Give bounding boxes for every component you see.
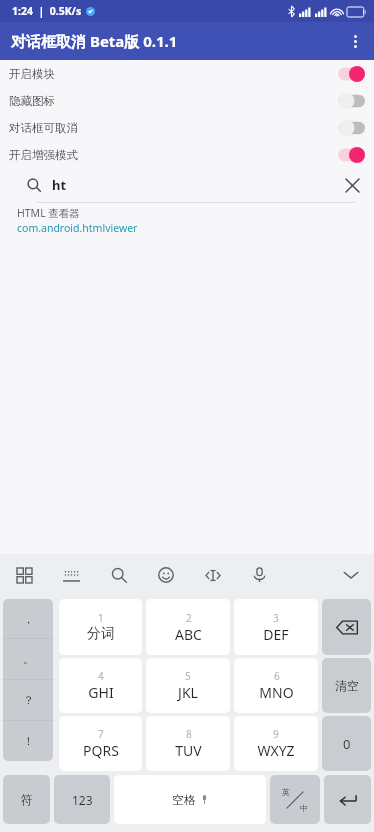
staticText: 0 xyxy=(343,735,351,753)
staticText: 符 xyxy=(21,792,33,807)
staticText: DEF xyxy=(263,625,289,644)
staticText: ht xyxy=(52,176,67,194)
button[interactable]: Hide keyboard xyxy=(328,554,374,596)
staticText: HTML 查看器 xyxy=(17,206,80,220)
button[interactable]: 清空 xyxy=(322,658,371,713)
staticText: ABC xyxy=(175,625,202,644)
button[interactable]: 7 xyxy=(59,716,142,771)
button[interactable]: Search xyxy=(95,554,142,596)
button[interactable]: 9 xyxy=(234,716,318,771)
button[interactable]: Keyboard xyxy=(48,554,95,596)
staticText: 对话框取消 Beta版 0.1.1 xyxy=(11,31,178,51)
button[interactable]: 4 xyxy=(59,658,142,713)
staticText: 4 xyxy=(98,669,104,683)
button[interactable]: 隐藏图标 xyxy=(0,87,374,114)
staticText: 对话框可取消 xyxy=(9,121,78,135)
staticText: 中 xyxy=(300,803,308,813)
button[interactable]: 开启模块 xyxy=(0,60,374,87)
button[interactable]: More options xyxy=(336,22,374,60)
staticText: ， xyxy=(23,612,34,626)
staticText: 开启模块 xyxy=(9,67,55,81)
staticText: ！ xyxy=(23,734,34,748)
button[interactable]: ， xyxy=(3,599,53,638)
staticText: 。 xyxy=(23,652,34,666)
button[interactable]: HTML 查看器 xyxy=(0,203,374,239)
button[interactable]: 2 xyxy=(146,599,230,655)
staticText: 3 xyxy=(273,611,279,625)
button[interactable]: 空格 xyxy=(114,775,266,824)
staticText: PQRS xyxy=(83,741,119,760)
button[interactable]: ？ xyxy=(3,680,53,720)
staticText: 英 xyxy=(282,787,290,797)
staticText: 7 xyxy=(98,727,104,741)
button[interactable]: 3 xyxy=(234,599,318,655)
staticText: 5 xyxy=(185,669,191,683)
staticText: ？ xyxy=(23,693,34,707)
button[interactable]: Enter xyxy=(324,775,371,824)
button[interactable]: Clear search xyxy=(335,168,369,202)
staticText: TUV xyxy=(175,741,202,760)
button[interactable]: 123 xyxy=(54,775,110,824)
button[interactable]: English Chinese toggle xyxy=(270,775,320,824)
button[interactable]: Backspace xyxy=(322,599,371,655)
staticText: 8 xyxy=(186,727,192,741)
button[interactable]: Keyboard layouts xyxy=(0,554,48,596)
button[interactable]: ！ xyxy=(3,721,53,761)
button[interactable]: 开启增强模式 xyxy=(0,141,374,168)
staticText: MNO xyxy=(259,683,294,702)
staticText: 分词 xyxy=(87,625,115,643)
button[interactable]: 符 xyxy=(3,775,50,824)
button[interactable]: Clipboard xyxy=(189,554,236,596)
staticText: 空格 xyxy=(172,792,196,807)
staticText: 9 xyxy=(273,727,279,741)
button[interactable]: 6 xyxy=(234,658,318,713)
staticText: 2 xyxy=(186,611,192,625)
staticText: 123 xyxy=(72,792,93,808)
staticText: GHI xyxy=(88,683,114,702)
button[interactable]: 5 xyxy=(146,658,230,713)
staticText: 清空 xyxy=(335,678,359,693)
staticText: WXYZ xyxy=(257,741,295,760)
staticText: JKL xyxy=(178,683,198,702)
button[interactable]: 8 xyxy=(146,716,230,771)
button[interactable]: 0 xyxy=(322,716,371,771)
button[interactable]: 1 xyxy=(59,599,142,655)
staticText: 1:24 | 0.5K/s xyxy=(12,4,82,18)
button[interactable]: Voice input xyxy=(236,554,283,596)
staticText: 开启增强模式 xyxy=(9,148,78,162)
staticText: 1 xyxy=(98,611,104,625)
button[interactable]: 对话框可取消 xyxy=(0,114,374,141)
button[interactable]: Emoji xyxy=(142,554,189,596)
staticText: com.android.htmlviewer xyxy=(17,221,138,235)
staticText: 隐藏图标 xyxy=(9,94,55,108)
button[interactable]: ht xyxy=(0,168,374,202)
staticText: 6 xyxy=(274,669,280,683)
